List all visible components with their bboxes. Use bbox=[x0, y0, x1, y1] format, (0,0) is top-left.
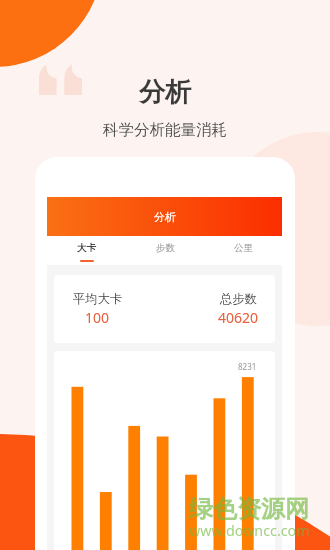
button[interactable]: 平均大卡 bbox=[54, 275, 275, 343]
staticText: 平均大卡 bbox=[73, 291, 123, 306]
staticText: 分析 bbox=[154, 210, 176, 224]
button[interactable]: 大卡 bbox=[47, 236, 126, 265]
staticText: 8231 bbox=[238, 361, 257, 372]
button[interactable]: 公里 bbox=[204, 236, 282, 265]
staticText: 科学分析能量消耗 bbox=[103, 120, 227, 140]
staticText: 大卡 bbox=[77, 242, 96, 254]
staticText: 绿色资源网 bbox=[189, 494, 309, 524]
staticText: www.downcc.com bbox=[189, 521, 310, 540]
staticText: 40620 bbox=[218, 308, 259, 327]
staticText: 100 bbox=[85, 308, 110, 327]
staticText: 公里 bbox=[234, 242, 253, 254]
staticText: 步数 bbox=[156, 242, 175, 254]
staticText: 分析 bbox=[139, 76, 191, 109]
button[interactable]: 步数 bbox=[126, 236, 204, 265]
button[interactable]: 分析 bbox=[47, 197, 282, 236]
staticText: 总步数 bbox=[220, 291, 257, 306]
